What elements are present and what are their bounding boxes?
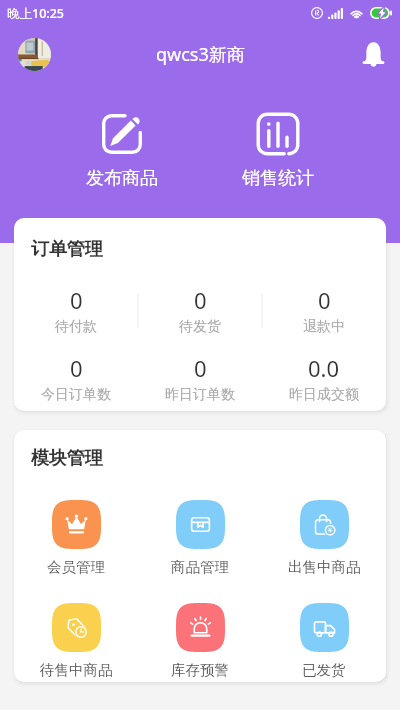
button[interactable]: 发布商品 — [76, 110, 168, 190]
staticText: 已发货 — [302, 661, 346, 679]
staticText: qwcs3新商 — [156, 42, 245, 67]
button[interactable]: 会员管理 — [14, 500, 138, 576]
staticText: 0 — [318, 285, 331, 315]
staticText: 今日订单数 — [41, 386, 111, 401]
button[interactable]: 0.0 — [262, 353, 386, 401]
button[interactable]: 商品管理 — [138, 500, 262, 576]
staticText: 待付款 — [55, 318, 97, 333]
staticText: 0 — [70, 353, 83, 383]
staticText: 0 — [194, 353, 207, 383]
staticText: 0 — [194, 285, 207, 315]
staticText: 出售中商品 — [288, 558, 361, 576]
staticText: 发布商品 — [86, 167, 158, 190]
staticText: 昨日成交额 — [289, 386, 359, 401]
staticText: 退款中 — [303, 318, 345, 333]
staticText: 订单管理 — [31, 238, 103, 261]
staticText: 晚上10:25 — [7, 5, 65, 22]
button[interactable]: 出售中商品 — [262, 500, 386, 576]
button[interactable]: 0 — [14, 353, 138, 401]
staticText: 0.0 — [308, 353, 340, 383]
button[interactable]: 待售中商品 — [14, 603, 138, 679]
button[interactable]: Notifications — [356, 37, 390, 71]
button[interactable]: 库存预警 — [138, 603, 262, 679]
staticText: 模块管理 — [31, 447, 103, 470]
button[interactable]: 0 — [138, 285, 262, 333]
button[interactable]: 已发货 — [262, 603, 386, 679]
button[interactable]: Profile — [18, 38, 51, 71]
staticText: 待发货 — [179, 318, 221, 333]
staticText: 库存预警 — [171, 661, 229, 679]
staticText: 待售中商品 — [40, 661, 113, 679]
staticText: 会员管理 — [47, 558, 105, 576]
button[interactable]: 销售统计 — [232, 110, 324, 190]
button[interactable]: 0 — [14, 285, 138, 333]
staticText: 昨日订单数 — [165, 386, 235, 401]
button[interactable]: 0 — [138, 353, 262, 401]
staticText: 0 — [70, 285, 83, 315]
staticText: 销售统计 — [242, 167, 314, 190]
staticText: 商品管理 — [171, 558, 229, 576]
button[interactable]: 0 — [262, 285, 386, 333]
